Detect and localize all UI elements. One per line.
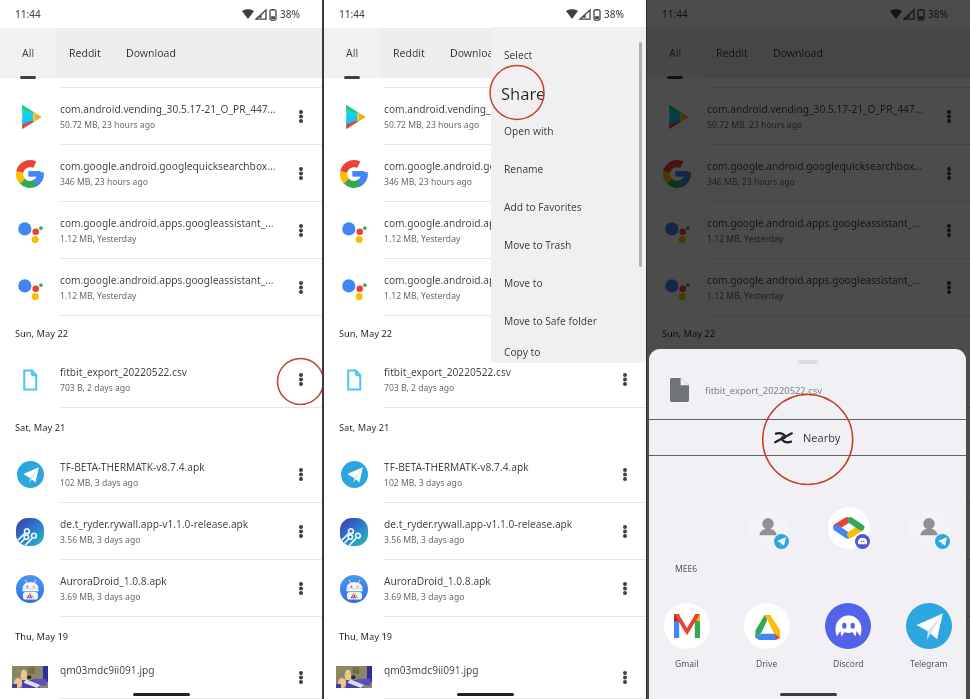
button[interactable]: Select: [491, 36, 646, 74]
button[interactable]: More options: [283, 655, 322, 699]
button[interactable]: fitbit_export_20220522.csv: [647, 351, 970, 408]
button[interactable]: More options: [283, 202, 322, 259]
button[interactable]: com.google.android.apps.googleassistant_…: [0, 202, 322, 259]
button[interactable]: More options: [607, 560, 646, 617]
button[interactable]: More options: [607, 145, 646, 202]
button[interactable]: More options: [931, 503, 970, 560]
button[interactable]: de.t_ryder.rywall.app-v1.1.0-release.apk: [0, 503, 322, 560]
staticText: Sat, May 21: [339, 421, 390, 434]
staticText: com.google.android.apps.googleassistant_…: [60, 216, 274, 230]
button[interactable]: More options: [607, 655, 646, 699]
button[interactable]: All: [324, 28, 381, 78]
button[interactable]: de.t_ryder.rywall.app-v1.1.0-release.apk: [647, 503, 970, 560]
staticText: 11:44: [15, 7, 41, 21]
button[interactable]: TF-BETA-THERMATK-v8.7.4.apk: [647, 446, 970, 503]
button[interactable]: Download: [437, 28, 513, 78]
button[interactable]: Reddit: [704, 28, 760, 78]
button[interactable]: com.android.vending_30.5.17-21_O_PR_447.…: [324, 88, 646, 145]
button[interactable]: com.android.vending_30.5.17-21_O_PR_447.…: [0, 88, 322, 145]
button[interactable]: More options: [607, 259, 646, 316]
button[interactable]: Share target: [908, 507, 954, 553]
button[interactable]: com.google.android.googlequicksearchbox.…: [324, 145, 646, 202]
button[interactable]: TF-BETA-THERMATK-v8.7.4.apk: [0, 446, 322, 503]
button[interactable]: com.google.android.apps.googleassistant_…: [0, 259, 322, 316]
button[interactable]: Share: [491, 74, 646, 112]
button[interactable]: More options: [931, 202, 970, 259]
button[interactable]: Move to Trash: [491, 226, 646, 264]
staticText: Reddit: [69, 46, 101, 60]
button[interactable]: AuroraDroid_1.0.8.apk: [647, 560, 970, 617]
button[interactable]: Move to Safe folder: [491, 302, 646, 340]
button[interactable]: com.google.android.apps.googleassistant_…: [324, 202, 646, 259]
button[interactable]: Open with: [491, 112, 646, 150]
button[interactable]: Drive: [738, 603, 796, 670]
button[interactable]: More options: [931, 446, 970, 503]
staticText: AuroraDroid_1.0.8.apk: [60, 574, 167, 588]
staticText: Reddit: [716, 46, 748, 60]
button[interactable]: More options: [283, 503, 322, 560]
button[interactable]: More options: [607, 503, 646, 560]
button[interactable]: All: [647, 28, 704, 78]
staticText: de.t_ryder.rywall.app-v1.1.0-release.apk: [384, 517, 573, 531]
button[interactable]: AuroraDroid_1.0.8.apk: [0, 560, 322, 617]
button[interactable]: Nearby: [649, 420, 966, 455]
staticText: qm03mdc9ii091.jpg: [384, 663, 479, 677]
button[interactable]: More options: [931, 351, 970, 408]
button[interactable]: More options: [931, 145, 970, 202]
button[interactable]: More options: [931, 259, 970, 316]
button[interactable]: TF-BETA-THERMATK-v8.7.4.apk: [324, 446, 646, 503]
button[interactable]: Download: [760, 28, 836, 78]
button[interactable]: Reddit: [57, 28, 113, 78]
staticText: Open with: [504, 124, 554, 138]
button[interactable]: Add to Favorites: [491, 188, 646, 226]
staticText: 703 B, 2 days ago: [384, 382, 455, 394]
button[interactable]: com.android.vending_30.5.17-21_O_PR_447.…: [647, 88, 970, 145]
button[interactable]: More options: [607, 351, 646, 408]
button[interactable]: Copy to: [491, 340, 646, 363]
staticText: Sun, May 22: [15, 327, 68, 340]
button[interactable]: More options: [283, 446, 322, 503]
button[interactable]: More options: [283, 351, 322, 408]
button[interactable]: Move to: [491, 264, 646, 302]
button[interactable]: Rename: [491, 150, 646, 188]
button[interactable]: com.google.android.googlequicksearchbox.…: [0, 145, 322, 202]
button[interactable]: More options: [283, 259, 322, 316]
button[interactable]: Share target: [747, 507, 793, 553]
button[interactable]: More options: [283, 560, 322, 617]
staticText: qm03mdc9ii091.jpg: [60, 663, 155, 677]
button[interactable]: More options: [283, 145, 322, 202]
staticText: Move to Safe folder: [504, 314, 597, 328]
button[interactable]: Gmail: [658, 603, 716, 670]
button[interactable]: More options: [607, 446, 646, 503]
button[interactable]: More options: [607, 88, 646, 145]
staticText: 50.72 MB, 23 hours ago: [60, 119, 156, 131]
button[interactable]: Reddit: [381, 28, 437, 78]
button[interactable]: com.google.android.apps.googleassistant_…: [647, 202, 970, 259]
staticText: All: [346, 46, 359, 60]
button[interactable]: Download: [113, 28, 189, 78]
staticText: 3.56 MB, 3 days ago: [707, 534, 788, 546]
button[interactable]: de.t_ryder.rywall.app-v1.1.0-release.apk: [324, 503, 646, 560]
button[interactable]: More options: [283, 88, 322, 145]
button[interactable]: Share target: [828, 507, 874, 553]
button[interactable]: Discord: [819, 603, 877, 670]
button[interactable]: All: [0, 28, 57, 78]
button[interactable]: fitbit_export_20220522.csv: [0, 351, 322, 408]
button[interactable]: qm03mdc9ii091.jpg: [324, 655, 646, 699]
button[interactable]: com.google.android.googlequicksearchbox.…: [647, 145, 970, 202]
staticText: AuroraDroid_1.0.8.apk: [384, 574, 491, 588]
button[interactable]: More options: [931, 655, 970, 699]
button[interactable]: qm03mdc9ii091.jpg: [0, 655, 322, 699]
button[interactable]: fitbit_export_20220522.csv: [324, 351, 646, 408]
button[interactable]: com.google.android.apps.googleassistant_…: [324, 259, 646, 316]
button[interactable]: More options: [607, 202, 646, 259]
staticText: Telegram: [910, 658, 948, 670]
button[interactable]: com.google.android.apps.googleassistant_…: [647, 259, 970, 316]
button[interactable]: Telegram: [900, 603, 958, 670]
button[interactable]: More options: [931, 560, 970, 617]
button[interactable]: AuroraDroid_1.0.8.apk: [324, 560, 646, 617]
button[interactable]: qm03mdc9ii091.jpg: [647, 655, 970, 699]
button[interactable]: More options: [931, 88, 970, 145]
